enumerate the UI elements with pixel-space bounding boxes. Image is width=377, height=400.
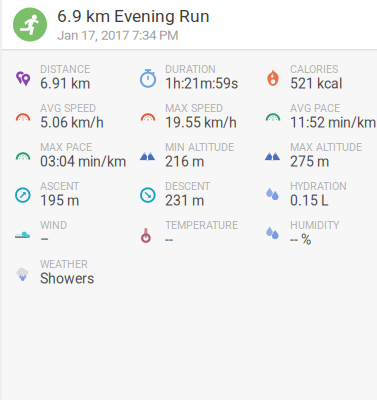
staticText: 216 m xyxy=(165,153,204,170)
staticText: 275 m xyxy=(290,153,329,170)
staticText: Showers xyxy=(40,270,94,287)
staticText: HUMIDITY xyxy=(290,219,339,231)
staticText: DURATION xyxy=(165,63,216,75)
staticText: DISTANCE xyxy=(40,63,90,75)
staticText: ASCENT xyxy=(40,180,79,192)
staticText: TEMPERATURE xyxy=(165,219,238,231)
staticText: MAX SPEED xyxy=(165,102,223,114)
staticText: -- xyxy=(165,231,173,248)
staticText: 6.9 km Evening Run xyxy=(57,6,210,26)
staticText: WEATHER xyxy=(40,258,88,270)
staticText: 1h:21m:59s xyxy=(165,75,238,92)
staticText: 19.55 km/h xyxy=(165,114,237,131)
staticText: -- % xyxy=(290,231,311,248)
staticText: CALORIES xyxy=(290,63,338,75)
staticText: DESCENT xyxy=(165,180,210,192)
staticText: WIND xyxy=(40,219,67,231)
staticText: MAX PACE xyxy=(40,141,92,153)
staticText: – xyxy=(40,231,49,248)
staticText: 195 m xyxy=(40,192,79,209)
staticText: AVG PACE xyxy=(290,102,340,114)
staticText: MAX ALTITUDE xyxy=(290,141,362,153)
staticText: 521 kcal xyxy=(290,75,342,92)
staticText: 0.15 L xyxy=(290,192,329,209)
staticText: 03:04 min/km xyxy=(40,153,126,170)
staticText: HYDRATION xyxy=(290,180,347,192)
staticText: 11:52 min/km xyxy=(290,114,376,131)
staticText: 6.91 km xyxy=(40,75,90,92)
staticText: Jan 17, 2017 7:34 PM xyxy=(57,27,179,43)
staticText: AVG SPEED xyxy=(40,102,96,114)
staticText: 231 m xyxy=(165,192,204,209)
staticText: MIN ALTITUDE xyxy=(165,141,234,153)
staticText: 5.06 km/h xyxy=(40,114,104,131)
